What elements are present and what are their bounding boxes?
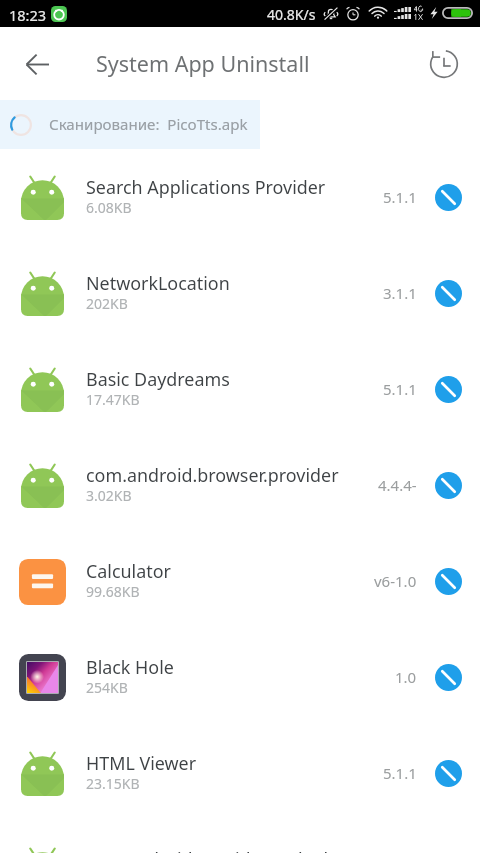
button[interactable]: Search Applications Provider [0, 149, 480, 245]
staticText: 3.1.1 [383, 283, 417, 303]
staticText: com.android.browser.provider [86, 463, 339, 487]
staticText: 5.1.1 [383, 763, 417, 783]
staticText: 23.15KB [86, 774, 140, 793]
staticText: com.android.providers.telephony [86, 847, 366, 853]
staticText: 6.08KB [86, 198, 132, 217]
staticText: 5.1.1 [383, 379, 417, 399]
button[interactable]: History [421, 41, 467, 87]
button[interactable]: Uninstall Search Applications Provider [435, 184, 462, 211]
staticText: 99.68KB [86, 582, 140, 601]
staticText: System App Uninstall [96, 49, 310, 78]
button[interactable]: Black Hole [0, 629, 480, 725]
button[interactable]: com.android.browser.provider [0, 437, 480, 533]
button[interactable]: Uninstall com.android.browser.provider [435, 472, 462, 499]
staticText: 5.1.1 [383, 187, 417, 207]
button[interactable]: Back [13, 40, 61, 88]
button[interactable]: Basic Daydreams [0, 341, 480, 437]
button[interactable]: Uninstall Basic Daydreams [435, 376, 462, 403]
button[interactable]: NetworkLocation [0, 245, 480, 341]
staticText: Calculator [86, 559, 171, 583]
staticText: v6-1.0 [374, 571, 417, 591]
staticText: 202KB [86, 294, 128, 313]
button[interactable]: com.android.providers.telephony [0, 821, 480, 853]
staticText: Сканирование: PicoTts.apk [49, 114, 248, 135]
staticText: Basic Daydreams [86, 367, 230, 391]
staticText: 1.0 [395, 667, 417, 687]
button[interactable]: Calculator [0, 533, 480, 629]
button[interactable]: HTML Viewer [0, 725, 480, 821]
button[interactable]: Uninstall NetworkLocation [435, 280, 462, 307]
staticText: 17.47KB [86, 390, 140, 409]
staticText: 254KB [86, 678, 128, 697]
staticText: HTML Viewer [86, 751, 197, 775]
staticText: 40.8K/s [267, 5, 316, 24]
button[interactable]: Uninstall Black Hole [435, 664, 462, 691]
staticText: NetworkLocation [86, 271, 230, 295]
staticText: Search Applications Provider [86, 175, 326, 199]
staticText: 4.4.4- [378, 475, 417, 495]
staticText: 18:23 [9, 5, 47, 25]
button[interactable]: Uninstall HTML Viewer [435, 760, 462, 787]
staticText: Black Hole [86, 655, 174, 679]
button[interactable]: Uninstall Calculator [435, 568, 462, 595]
staticText: 3.02KB [86, 486, 132, 505]
